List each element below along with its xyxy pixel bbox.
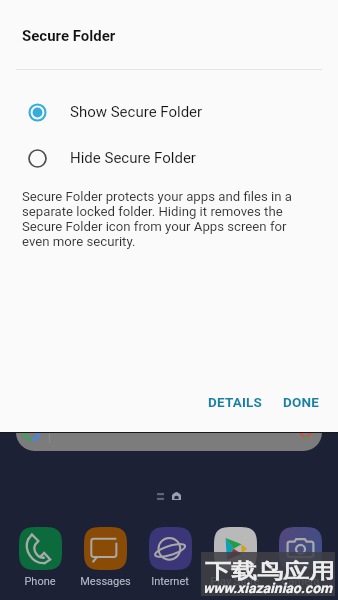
staticText: Hide Secure Folder (70, 149, 196, 167)
staticText: DONE (283, 394, 320, 410)
button[interactable]: Show Secure Folder (0, 89, 338, 135)
staticText: Secure Folder (22, 27, 116, 45)
staticText: Secure Folder protects your apps and fil… (22, 189, 306, 249)
button[interactable]: Recent apps (157, 493, 164, 500)
button[interactable]: Play Store (202, 527, 268, 588)
staticText: DETAILS (208, 394, 263, 410)
staticText: www.xiazainiao.com (203, 580, 333, 596)
button[interactable]: Messages (72, 527, 138, 588)
button[interactable]: DETAILS (198, 387, 273, 417)
button[interactable]: Camera (267, 527, 333, 588)
button[interactable]: Home (172, 492, 181, 500)
button[interactable]: Phone (7, 527, 73, 588)
staticText: Camera (281, 575, 320, 588)
staticText: 下载鸟应用 (205, 558, 335, 584)
button[interactable]: DONE (273, 387, 330, 417)
button[interactable]: Hide Secure Folder (0, 135, 338, 181)
staticText: Phone (24, 575, 56, 588)
staticText: Show Secure Folder (70, 103, 203, 121)
staticText: Play Store (210, 575, 260, 588)
button[interactable]: Internet (137, 527, 203, 588)
staticText: Messages (80, 575, 131, 588)
staticText: Internet (151, 575, 189, 588)
